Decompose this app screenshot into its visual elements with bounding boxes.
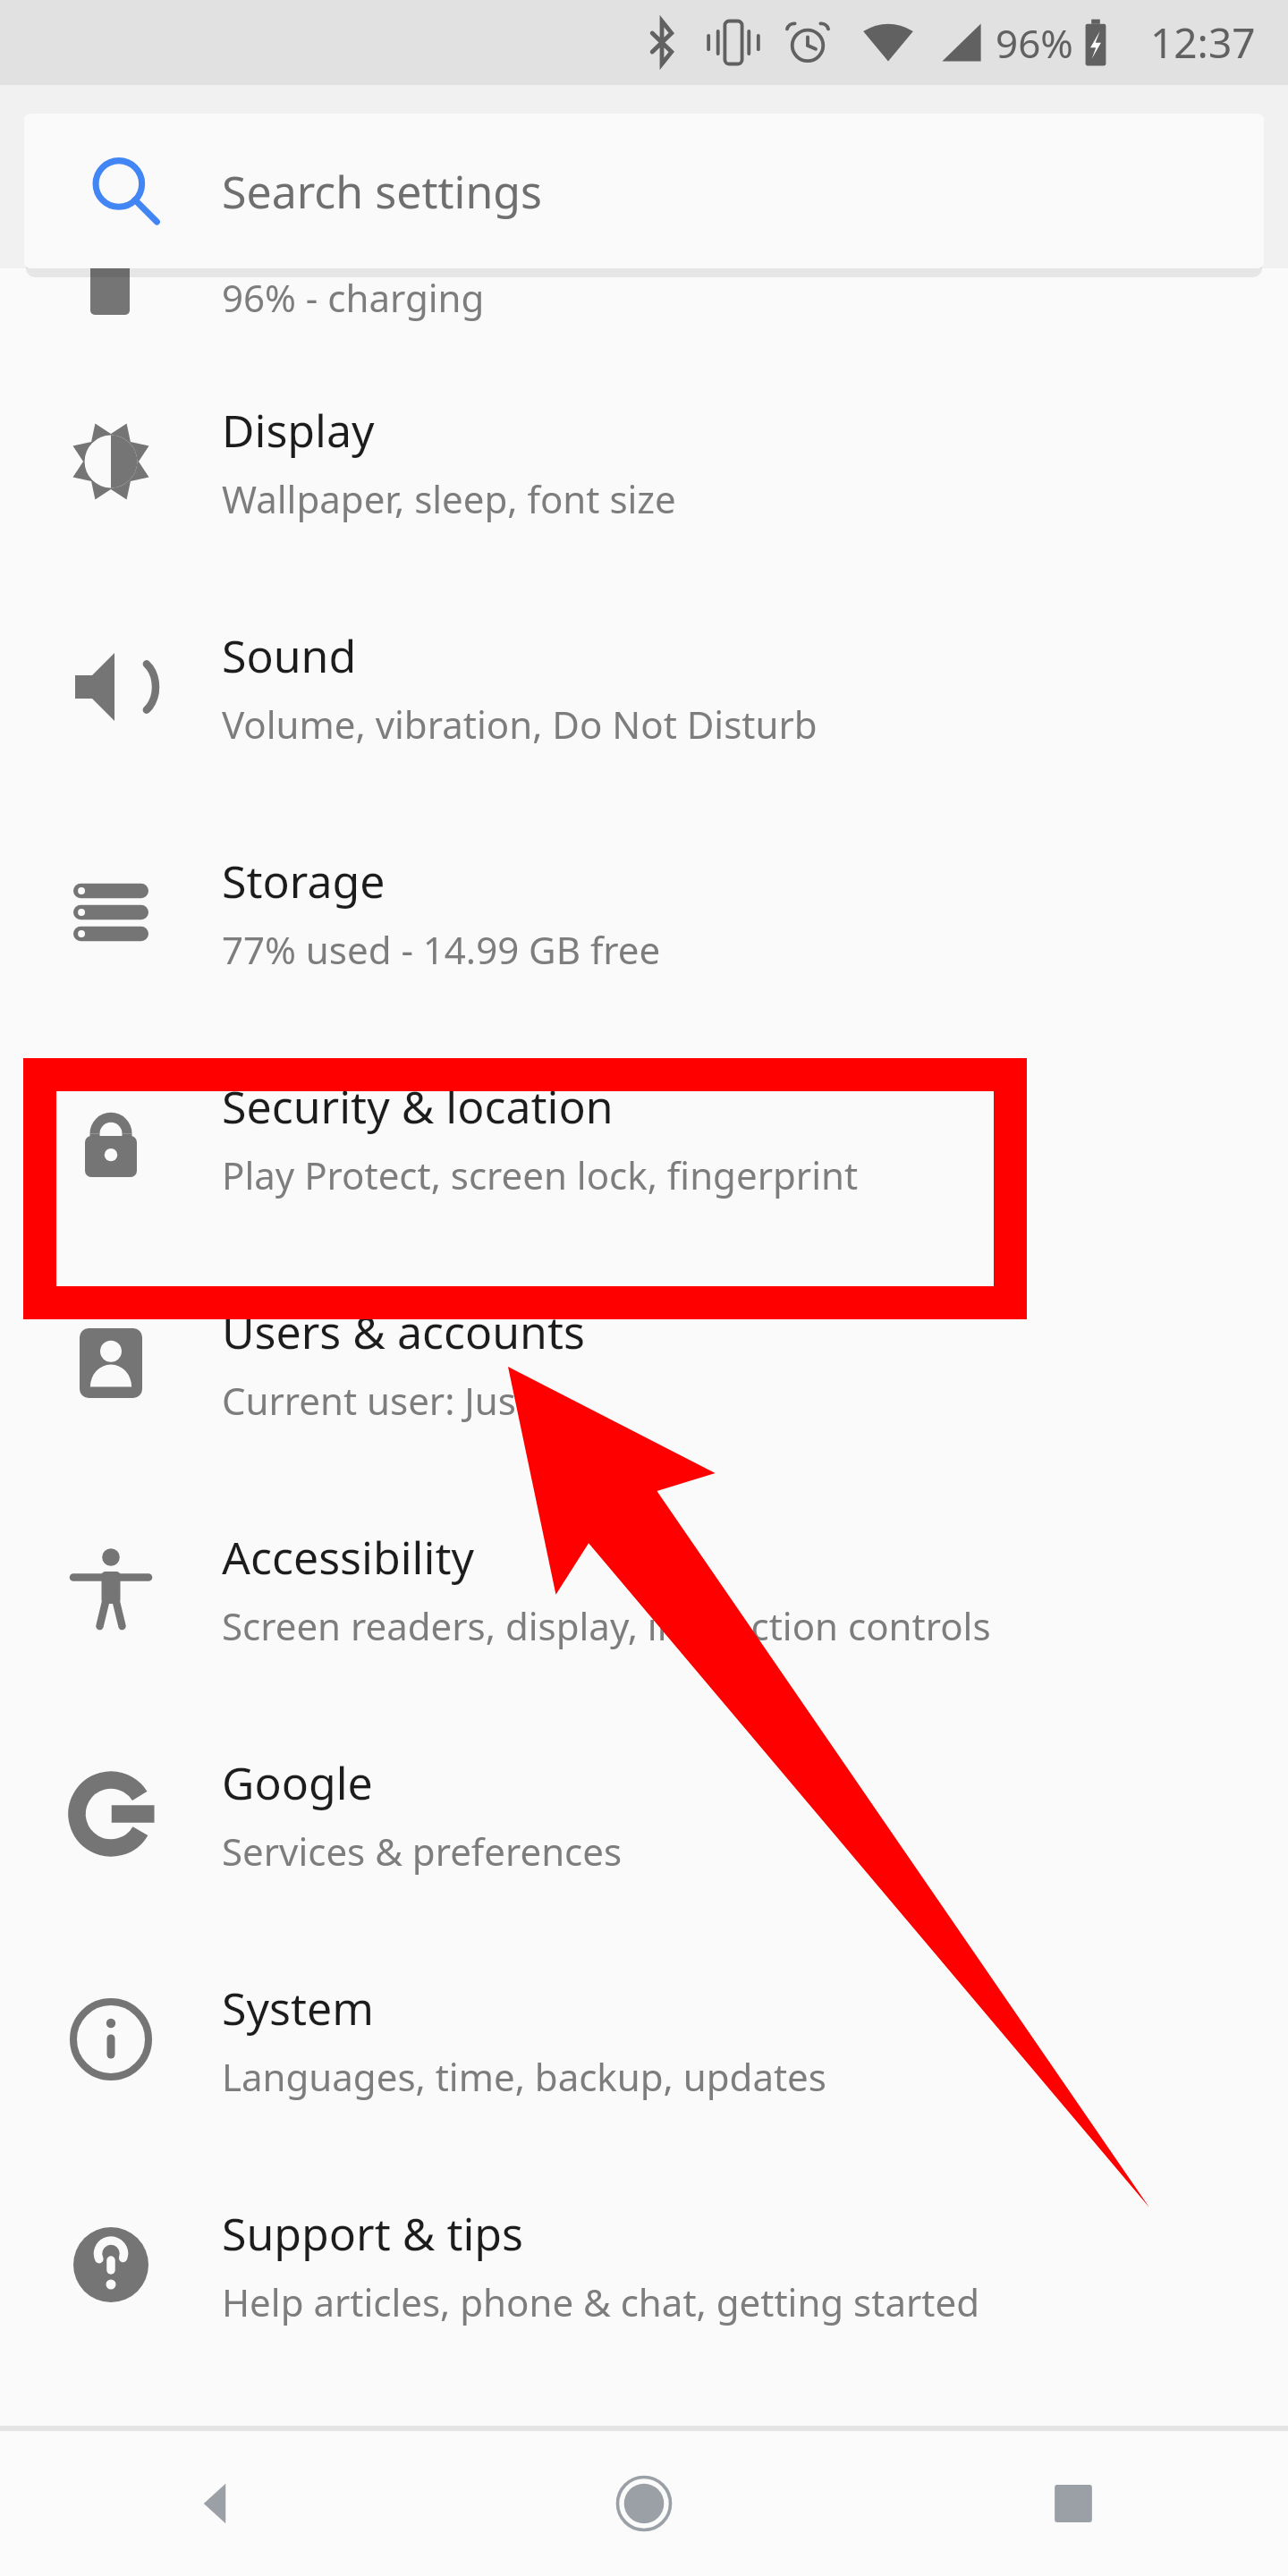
staticText: System [222, 1978, 374, 2038]
button[interactable]: Security & location [0, 1025, 1288, 1250]
button[interactable]: Storage [0, 800, 1288, 1025]
staticText: Users & accounts [222, 1301, 585, 1362]
staticText: Sound [222, 625, 357, 686]
button[interactable]: Home [429, 2431, 859, 2576]
staticText: Current user: Justin [222, 1375, 563, 1426]
staticText: Screen readers, display, interaction con… [222, 1600, 991, 1651]
staticText: Wallpaper, sleep, font size [222, 473, 676, 524]
staticText: Storage [222, 851, 386, 911]
staticText: Languages, time, backup, updates [222, 2051, 826, 2102]
button[interactable]: Google [0, 1701, 1288, 1927]
staticText: Display [222, 400, 375, 461]
button[interactable]: Recent apps [859, 2431, 1288, 2576]
button[interactable]: Sound [0, 574, 1288, 800]
button[interactable]: System [0, 1927, 1288, 2152]
button[interactable]: Display [0, 349, 1288, 574]
staticText: Play Protect, screen lock, fingerprint [222, 1149, 859, 1200]
staticText: Accessibility [222, 1527, 474, 1588]
staticText: 77% used - 14.99 GB free [222, 924, 661, 975]
staticText: Search settings [222, 161, 542, 222]
staticText: Help articles, phone & chat, getting sta… [222, 2276, 979, 2327]
button[interactable]: Support & tips [0, 2152, 1288, 2377]
staticText: 96% - charging [222, 272, 485, 323]
button[interactable]: Search settings [24, 114, 1264, 268]
staticText: Support & tips [222, 2203, 524, 2264]
staticText: 96% [996, 16, 1073, 70]
staticText: 12:37 [1150, 14, 1256, 71]
button[interactable]: Accessibility [0, 1476, 1288, 1701]
staticText: Volume, vibration, Do Not Disturb [222, 699, 818, 750]
staticText: Services & preferences [222, 1826, 623, 1877]
button[interactable]: Users & accounts [0, 1250, 1288, 1476]
button[interactable]: Back [0, 2431, 429, 2576]
staticText: Security & location [222, 1076, 614, 1137]
staticText: Google [222, 1752, 373, 1813]
